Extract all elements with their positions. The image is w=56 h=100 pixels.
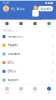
button[interactable]: Cards xyxy=(14,85,28,93)
button[interactable]: Hi, Alex xyxy=(3,6,25,12)
button[interactable]: Rewards xyxy=(0,41,56,50)
staticText: Offers xyxy=(7,70,15,73)
staticText: Transactions xyxy=(7,35,22,38)
staticText: Upgrade xyxy=(39,7,51,10)
button[interactable]: Bills xyxy=(0,58,56,67)
button[interactable]: Scan xyxy=(14,22,28,28)
staticText: Hi, Alex xyxy=(11,6,25,11)
staticText: More xyxy=(47,26,51,28)
button[interactable]: Insurance xyxy=(0,50,56,58)
button[interactable]: Transactions xyxy=(0,32,56,41)
button[interactable]: Upgrade xyxy=(38,6,53,11)
staticText: Pay xyxy=(5,26,8,28)
staticText: Bills xyxy=(7,61,13,64)
staticText: Rewards xyxy=(7,43,17,47)
button[interactable]: Offers xyxy=(0,67,56,76)
staticText: Cards xyxy=(32,26,37,28)
staticText: Scan xyxy=(19,26,23,28)
button[interactable]: Home xyxy=(0,85,14,93)
staticText: Support xyxy=(7,78,18,82)
button[interactable]: Cards xyxy=(28,22,42,28)
staticText: Cards xyxy=(18,91,23,93)
staticText: Home xyxy=(5,91,9,93)
button[interactable]: Support xyxy=(0,76,56,84)
staticText: Insurance xyxy=(7,52,20,56)
staticText: Services xyxy=(3,29,13,32)
staticText: Me xyxy=(48,91,50,93)
staticText: 9:41 xyxy=(3,1,10,5)
button[interactable]: Pay xyxy=(28,85,42,93)
button[interactable]: More xyxy=(42,22,56,28)
button[interactable]: Pay xyxy=(0,22,14,28)
button[interactable]: Me xyxy=(42,85,56,93)
